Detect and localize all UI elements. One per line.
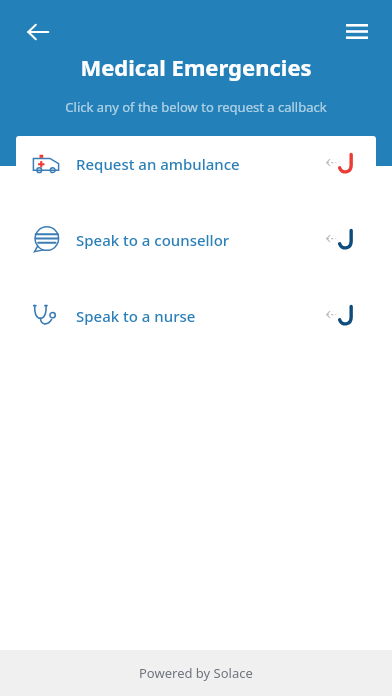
staticText: Request an ambulance — [76, 154, 240, 174]
staticText: Medical Emergencies — [80, 52, 312, 82]
button[interactable]: Back — [16, 10, 60, 54]
staticText: Speak to a counsellor — [76, 230, 230, 250]
staticText: Speak to a nurse — [76, 306, 196, 326]
button[interactable]: Speak to a nurse — [16, 288, 376, 344]
staticText: Powered by Solace — [139, 664, 253, 682]
button[interactable]: Speak to a counsellor — [16, 212, 376, 268]
button[interactable]: Request an ambulance — [16, 136, 376, 192]
button[interactable]: Menu — [334, 8, 380, 54]
staticText: Click any of the below to request a call… — [65, 98, 327, 116]
